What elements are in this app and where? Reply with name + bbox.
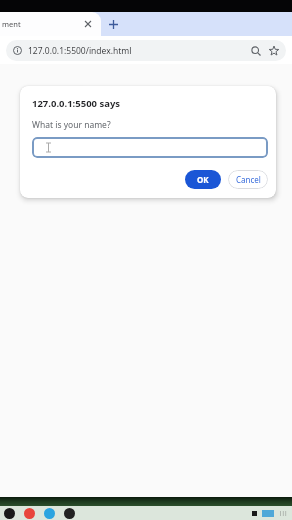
button[interactable]: App	[4, 508, 15, 519]
button[interactable]: Bookmark	[265, 42, 283, 60]
button[interactable]: Close tab	[82, 18, 94, 30]
staticText: 127.0.0.1:5500/index.html	[28, 45, 247, 57]
button[interactable]: Zoom	[247, 42, 265, 60]
button[interactable]: Editor	[44, 508, 55, 519]
button[interactable]: Browser	[24, 508, 35, 519]
staticText: Cancel	[236, 174, 261, 185]
button[interactable]: Terminal	[64, 508, 75, 519]
staticText: 127.0.0.1:5500 says	[32, 97, 121, 110]
button[interactable]: ment	[0, 12, 101, 36]
staticText: |||	[279, 510, 288, 517]
button[interactable]	[32, 137, 268, 158]
staticText: What is your name?	[32, 119, 111, 131]
staticText: ment	[2, 19, 21, 29]
button[interactable]: OK	[185, 170, 221, 189]
staticText: OK	[197, 174, 209, 185]
button[interactable]: Cancel	[228, 170, 268, 189]
button[interactable]: New tab	[102, 13, 124, 35]
button[interactable]: 127.0.0.1:5500/index.html	[6, 40, 286, 61]
